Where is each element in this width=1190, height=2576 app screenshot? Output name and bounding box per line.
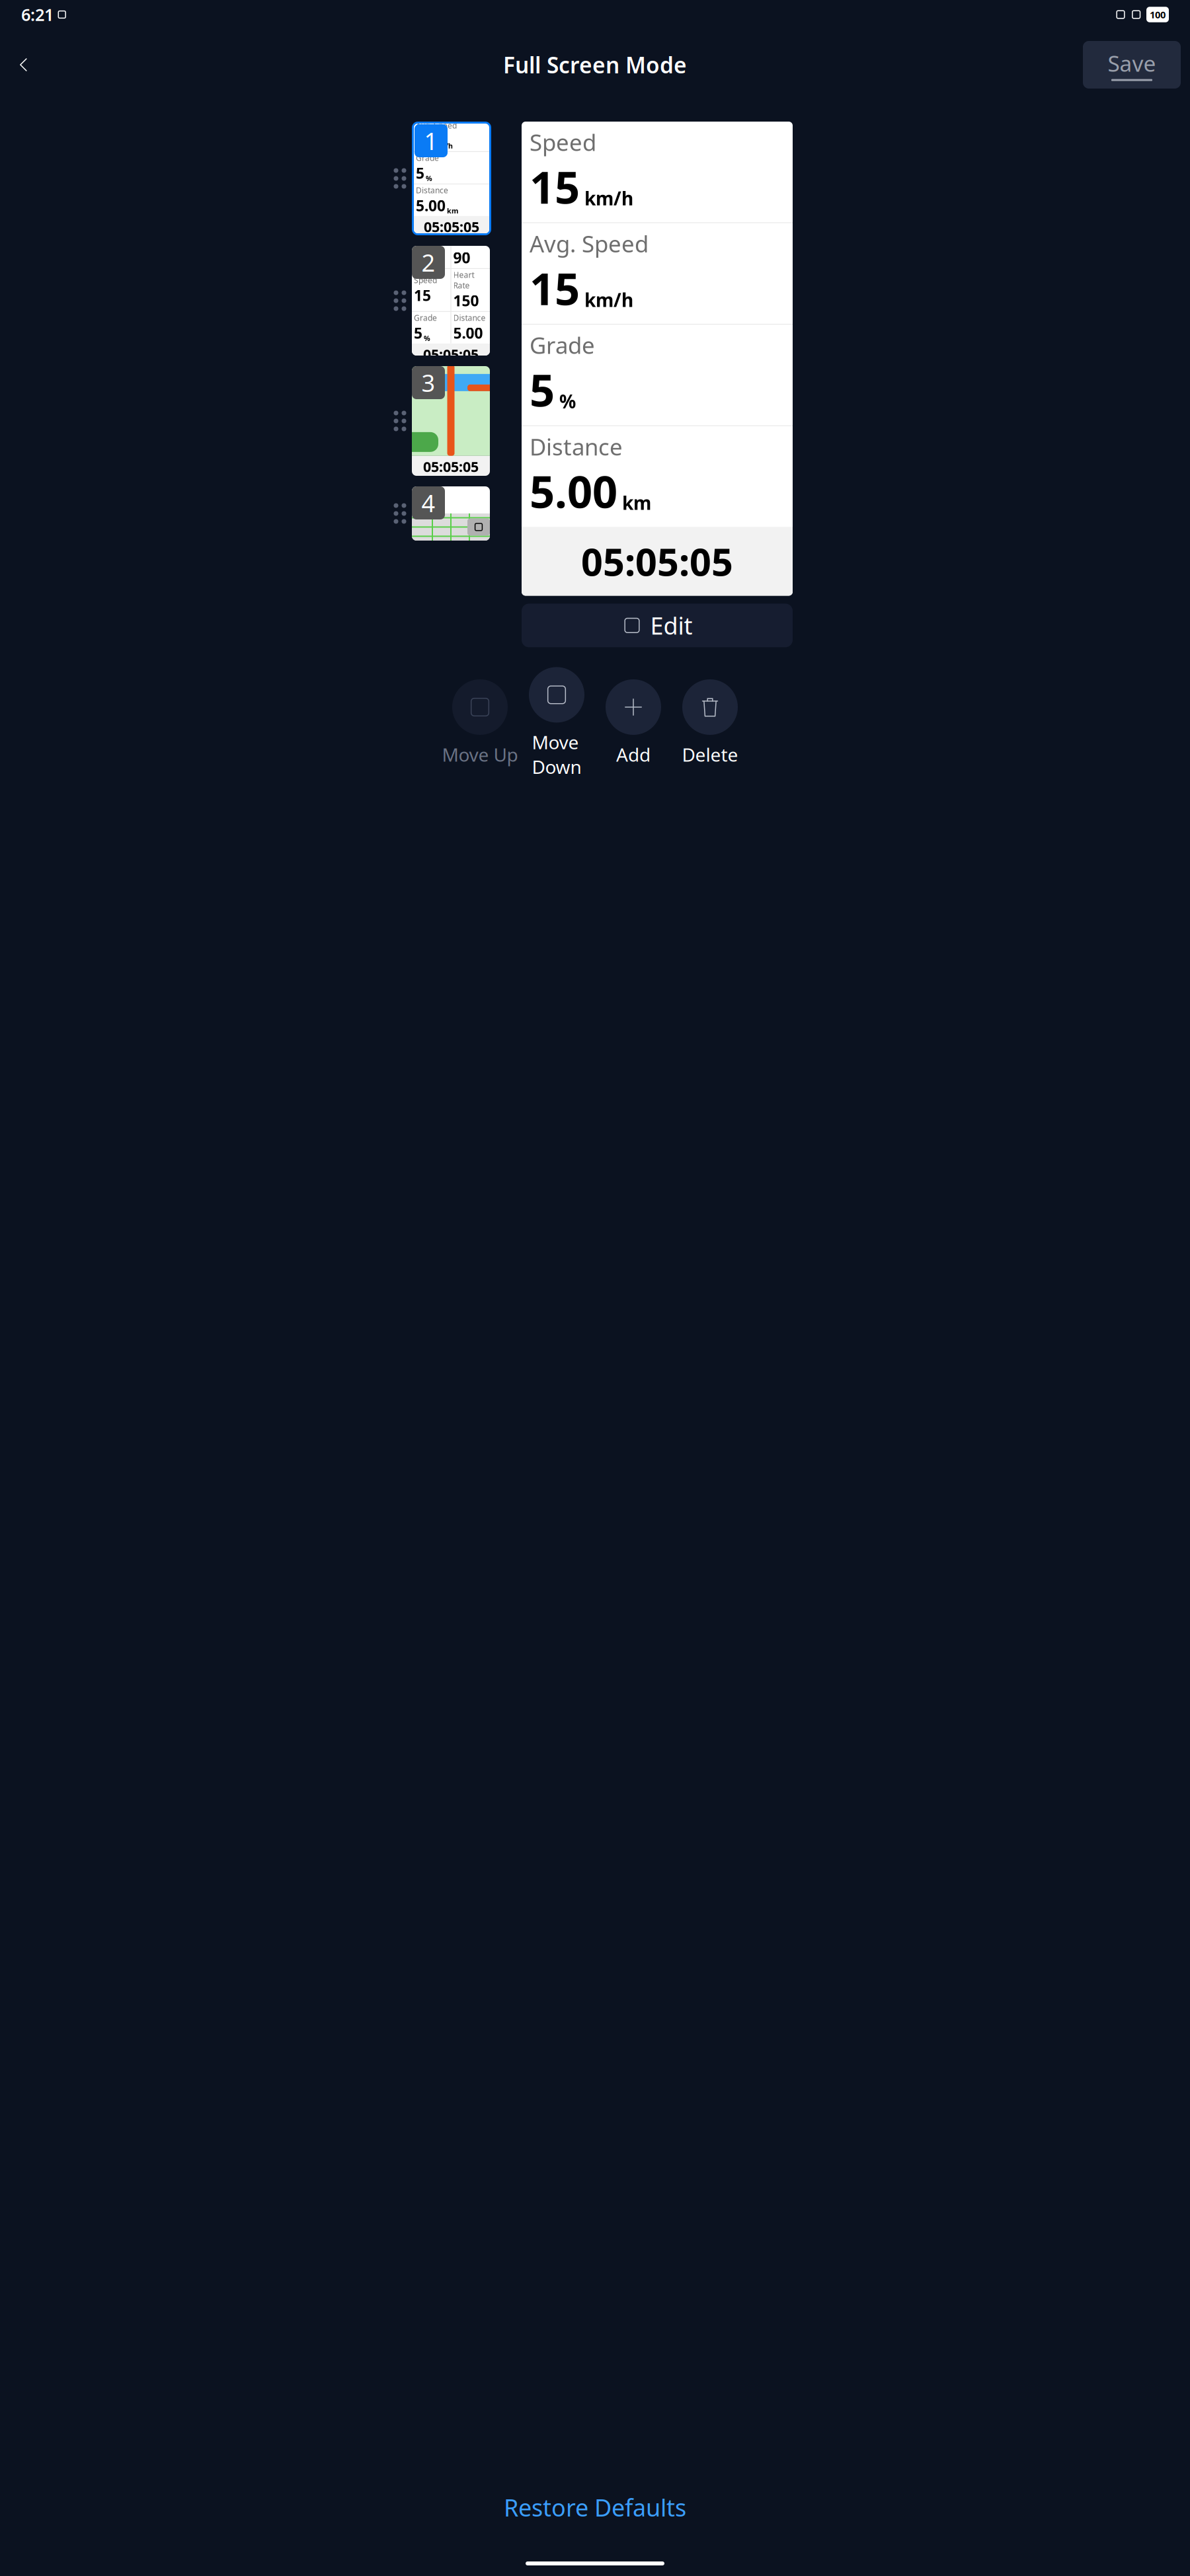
staticText: 90 — [453, 248, 470, 268]
staticText: km — [622, 490, 651, 515]
staticText: 5 — [414, 323, 422, 343]
button[interactable]: Move Up — [442, 679, 518, 767]
staticText: Save — [1108, 49, 1156, 78]
staticText: 150 — [414, 248, 440, 268]
staticText: Full Screen Mode — [503, 50, 687, 79]
button[interactable]: 05:05:05 — [392, 366, 490, 476]
button[interactable]: Move Down — [518, 667, 595, 779]
staticText: Distance — [416, 185, 448, 195]
staticText: 1 — [424, 125, 438, 157]
staticText: Speed — [414, 275, 437, 285]
staticText: 05:05:05 — [424, 217, 479, 236]
staticText: Distance — [453, 312, 486, 323]
staticText: km/h — [584, 287, 633, 312]
staticText: Grade — [530, 330, 595, 360]
staticText: 05:05:05 — [581, 536, 733, 586]
button[interactable]: Save — [1083, 41, 1181, 89]
staticText: Move Up — [442, 742, 518, 767]
staticText: Delete — [682, 742, 738, 767]
staticText: 150 — [453, 291, 479, 310]
staticText: Cadence — [453, 237, 486, 248]
staticText: 5.00 — [416, 195, 446, 215]
staticText: Avg. Speed — [416, 120, 457, 131]
staticText: km/h — [584, 186, 633, 211]
button[interactable]: Edit — [522, 604, 793, 647]
button[interactable]: Back — [9, 50, 38, 79]
staticText: 3 — [421, 367, 435, 398]
staticText: 6:21 — [21, 3, 54, 26]
staticText: km/h — [434, 141, 453, 151]
staticText: 15 — [530, 259, 580, 317]
staticText: Heart Rate — [453, 269, 474, 291]
button[interactable]: Add — [595, 679, 672, 767]
staticText: 15 — [414, 285, 431, 305]
button[interactable]: Avg. Speed — [392, 122, 491, 235]
staticText: Grade — [414, 312, 437, 323]
staticText: % — [426, 174, 432, 183]
staticText: % — [424, 334, 430, 343]
staticText: 05:05:05 — [423, 457, 479, 476]
staticText: % — [559, 389, 576, 413]
staticText: Chart — [415, 488, 435, 499]
staticText: Power — [414, 237, 437, 248]
button[interactable]: Delete — [672, 679, 748, 767]
staticText: Grade — [416, 153, 439, 163]
staticText: 100 — [1150, 8, 1166, 21]
staticText: 2 — [421, 247, 435, 278]
staticText: Move Down — [532, 730, 581, 779]
staticText: Distance — [530, 431, 623, 462]
button[interactable]: Restore Defaults — [0, 2484, 1190, 2531]
staticText: Speed — [530, 127, 596, 157]
staticText: 15 — [530, 157, 580, 216]
staticText: 15 — [416, 131, 433, 151]
staticText: 5 — [530, 360, 555, 419]
staticText: km — [447, 206, 458, 215]
staticText: 5 — [416, 163, 424, 183]
staticText: Restore Defaults — [504, 2492, 686, 2523]
staticText: Edit — [650, 610, 693, 641]
staticText: 5.00 — [530, 462, 617, 520]
staticText: Add — [616, 742, 651, 767]
staticText: 4 — [421, 487, 435, 519]
button[interactable]: Chart — [392, 486, 490, 541]
staticText: 5.00 — [453, 323, 483, 343]
staticText: Avg. Speed — [530, 228, 649, 259]
button[interactable]: Power — [392, 246, 490, 356]
staticText: 05:05:05 — [423, 345, 479, 364]
